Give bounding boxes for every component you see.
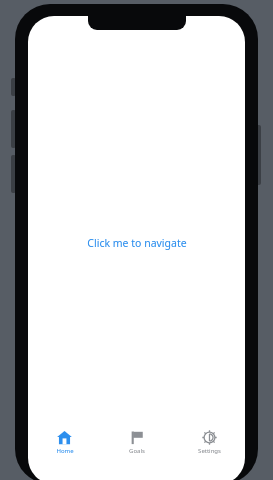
other: Settings (202, 430, 217, 445)
button[interactable]: Settings (173, 425, 245, 459)
staticText: Goals (129, 447, 145, 455)
staticText: Home (56, 447, 74, 455)
button[interactable]: Click me to navigate (83, 234, 191, 252)
button[interactable]: Goals (101, 425, 173, 459)
staticText: Settings (198, 447, 221, 455)
button[interactable]: Home (28, 425, 101, 459)
other: Goals (130, 430, 145, 445)
other: Home (57, 430, 72, 445)
